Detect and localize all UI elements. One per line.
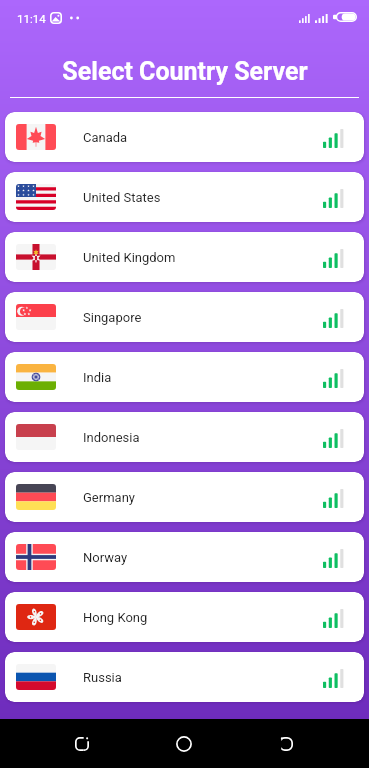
staticText: India — [83, 370, 112, 385]
staticText: Norway — [83, 550, 128, 565]
staticText: Singapore — [83, 310, 142, 325]
button[interactable]: Back — [264, 722, 308, 766]
button[interactable]: Recent apps — [60, 722, 104, 766]
button[interactable]: India — [5, 352, 364, 402]
staticText: 11:14 — [17, 12, 46, 25]
staticText: United States — [83, 190, 161, 205]
button[interactable]: Norway — [5, 532, 364, 582]
button[interactable]: Germany — [5, 472, 364, 522]
button[interactable]: United Kingdom — [5, 232, 364, 282]
button[interactable]: Home — [162, 722, 206, 766]
button[interactable]: United States — [5, 172, 364, 222]
button[interactable]: Singapore — [5, 292, 364, 342]
button[interactable]: Hong Kong — [5, 592, 364, 642]
button[interactable]: Indonesia — [5, 412, 364, 462]
staticText: Indonesia — [83, 430, 140, 445]
staticText: Canada — [83, 130, 128, 145]
staticText: Select Country Server — [62, 57, 308, 86]
button[interactable]: Canada — [5, 112, 364, 162]
button[interactable]: Russia — [5, 652, 364, 702]
staticText: Russia — [83, 670, 122, 685]
staticText: Hong Kong — [83, 610, 148, 625]
staticText: United Kingdom — [83, 250, 176, 265]
staticText: Germany — [83, 490, 135, 505]
